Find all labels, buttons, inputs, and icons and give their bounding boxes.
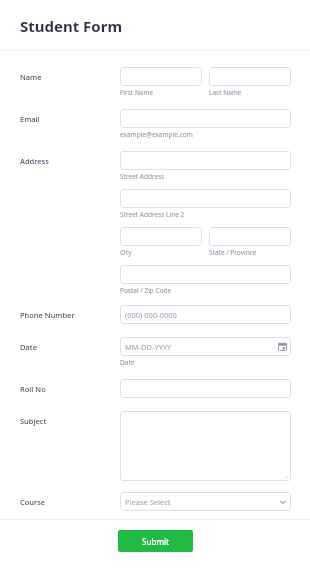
- staticText: Student Form: [20, 16, 123, 36]
- staticText: Name: [20, 72, 120, 82]
- staticText: Phone Number: [20, 310, 120, 320]
- staticText: State / Province: [209, 248, 257, 257]
- staticText: example@example.com: [120, 130, 193, 139]
- button[interactable]: State / Province: [209, 227, 291, 246]
- staticText: Street Address: [120, 172, 165, 181]
- other: Pick date: [278, 342, 287, 351]
- staticText: Date: [20, 342, 120, 352]
- staticText: (000) 000-0000: [125, 310, 177, 320]
- staticText: Course: [20, 497, 120, 507]
- staticText: Roll No: [20, 384, 120, 394]
- staticText: Address: [20, 156, 120, 166]
- staticText: Last Name: [209, 88, 242, 97]
- staticText: First Name: [120, 88, 154, 97]
- button[interactable]: Street Address: [120, 151, 291, 170]
- button[interactable]: Last Name: [209, 67, 291, 86]
- staticText: Email: [20, 114, 120, 124]
- button[interactable]: Date: [120, 337, 291, 356]
- staticText: Submit: [142, 536, 170, 547]
- button[interactable]: City: [120, 227, 202, 246]
- staticText: Postal / Zip Code: [120, 286, 172, 295]
- staticText: Street Address Line 2: [120, 210, 185, 219]
- button[interactable]: Roll No: [120, 379, 291, 398]
- button[interactable]: Submit: [118, 530, 193, 552]
- staticText: Subject: [20, 416, 120, 426]
- button[interactable]: Street Address Line 2: [120, 189, 291, 208]
- button[interactable]: Postal / Zip Code: [120, 265, 291, 284]
- staticText: MM-DD-YYYY: [125, 342, 172, 352]
- staticText: Date: [120, 358, 135, 367]
- button[interactable]: Subject: [120, 411, 291, 481]
- staticText: Please Select: [125, 497, 171, 507]
- button[interactable]: Email: [120, 109, 291, 128]
- staticText: City: [120, 248, 132, 257]
- other: Open course list: [279, 498, 287, 506]
- button[interactable]: Course: [120, 492, 291, 511]
- button[interactable]: Phone Number: [120, 305, 291, 324]
- button[interactable]: First Name: [120, 67, 202, 86]
